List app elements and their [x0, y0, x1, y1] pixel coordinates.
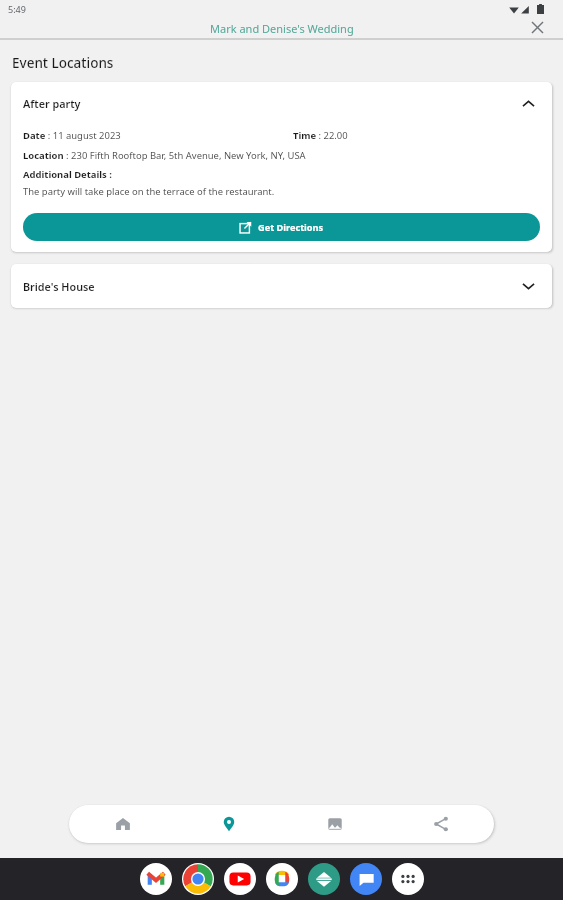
button[interactable]: After party	[11, 82, 552, 125]
staticText: The party will take place on the terrace…	[23, 185, 275, 198]
button[interactable]: Close	[526, 17, 548, 38]
button[interactable]: Home	[69, 805, 176, 843]
button[interactable]: All apps	[392, 863, 424, 895]
staticText: Additional Details :	[23, 168, 112, 181]
staticText: After party	[23, 96, 81, 111]
button[interactable]: Evernote	[308, 863, 340, 895]
staticText: Date : 11 august 2023	[23, 129, 121, 142]
staticText: 5:49	[8, 3, 26, 15]
button[interactable]: Share	[388, 805, 494, 843]
button[interactable]: Locations	[176, 805, 282, 843]
button[interactable]: YouTube	[224, 863, 256, 895]
staticText: Location : 230 Fifth Rooftop Bar, 5th Av…	[23, 149, 306, 162]
staticText: Mark and Denise's Wedding	[210, 21, 354, 36]
button[interactable]: Messages	[350, 863, 382, 895]
button[interactable]: Get Directions	[23, 213, 540, 241]
staticText: Time : 22.00	[293, 129, 348, 142]
staticText: Get Directions	[258, 221, 324, 234]
button[interactable]: Bride's House	[11, 264, 552, 308]
button[interactable]: Chrome	[182, 863, 214, 895]
button[interactable]: Photos	[282, 805, 388, 843]
staticText: Event Locations	[12, 54, 114, 72]
button[interactable]: Gmail	[140, 863, 172, 895]
button[interactable]: Photos	[266, 863, 298, 895]
staticText: Bride's House	[23, 279, 95, 294]
